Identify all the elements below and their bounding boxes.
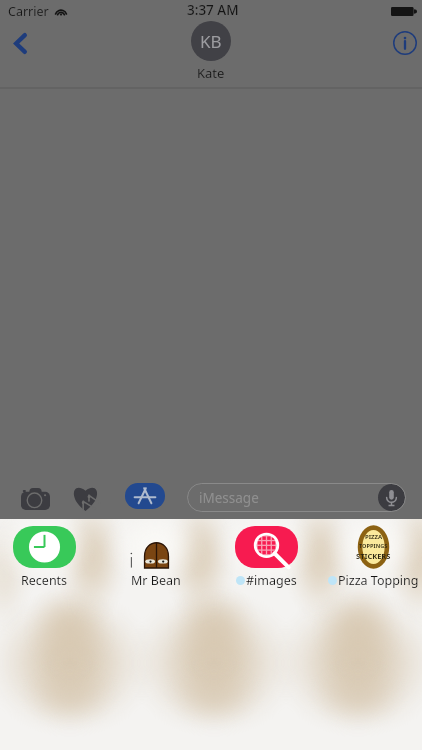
button[interactable]: Details [393, 31, 417, 55]
staticText: iMessage [199, 489, 259, 507]
button[interactable]: KB [191, 21, 231, 82]
staticText: KB [200, 30, 222, 53]
button[interactable]: Digital Touch [64, 480, 106, 516]
staticText: Kate [197, 64, 225, 82]
staticText: Recents [21, 572, 68, 589]
button[interactable]: Camera [14, 480, 56, 516]
staticText: STICKERS [356, 551, 391, 561]
staticText: #images [246, 572, 297, 589]
button[interactable]: PIZZA [320, 519, 422, 595]
staticText: Mr Bean [131, 572, 181, 589]
button[interactable]: Recents [0, 519, 97, 595]
staticText: TOPPINGS [359, 542, 388, 550]
button[interactable]: #images [213, 519, 319, 595]
button[interactable]: Mr Bean [102, 519, 208, 595]
button[interactable]: App Store [125, 483, 165, 509]
staticText: 3:37 AM [187, 1, 239, 19]
staticText: Pizza Topping [338, 572, 419, 589]
button[interactable]: Back [3, 26, 37, 60]
staticText: PIZZA [365, 533, 383, 541]
button[interactable]: iMessage [187, 483, 406, 512]
staticText: Carrier [8, 3, 49, 20]
